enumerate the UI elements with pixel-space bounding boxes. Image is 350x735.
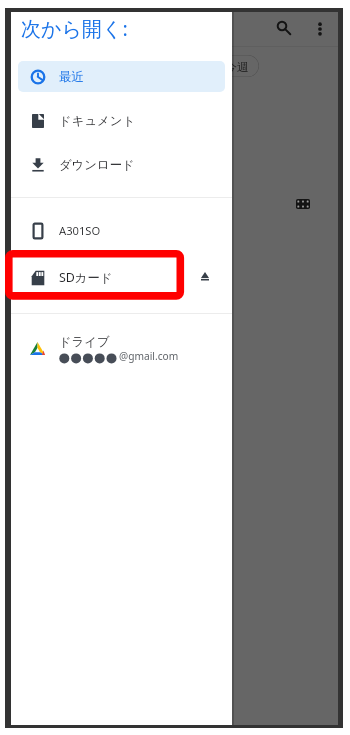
staticText: ダウンロード <box>59 157 135 173</box>
staticText: 今週 <box>225 59 249 74</box>
button[interactable]: ドライブ <box>18 328 225 368</box>
button[interactable]: 今週 <box>210 55 259 77</box>
staticText: @gmail.com <box>119 349 179 363</box>
button[interactable]: ドキュメント <box>18 105 225 136</box>
button[interactable]: SDカード <box>18 262 225 293</box>
staticText: SDカード <box>59 269 113 286</box>
button[interactable]: A301SO <box>18 215 225 246</box>
button[interactable]: Grid view <box>290 191 316 217</box>
button[interactable]: ダウンロード <box>18 149 225 180</box>
staticText: 最近 <box>59 69 84 85</box>
button[interactable]: More options <box>306 15 334 43</box>
button[interactable]: Eject SD card <box>193 261 217 292</box>
staticText: ドライブ <box>59 334 110 350</box>
staticText: 次から開く: <box>21 15 128 42</box>
staticText: A301SO <box>59 223 101 238</box>
button[interactable]: Search <box>268 12 296 40</box>
staticText: ドキュメント <box>59 113 136 129</box>
button[interactable]: 最近 <box>18 61 225 92</box>
